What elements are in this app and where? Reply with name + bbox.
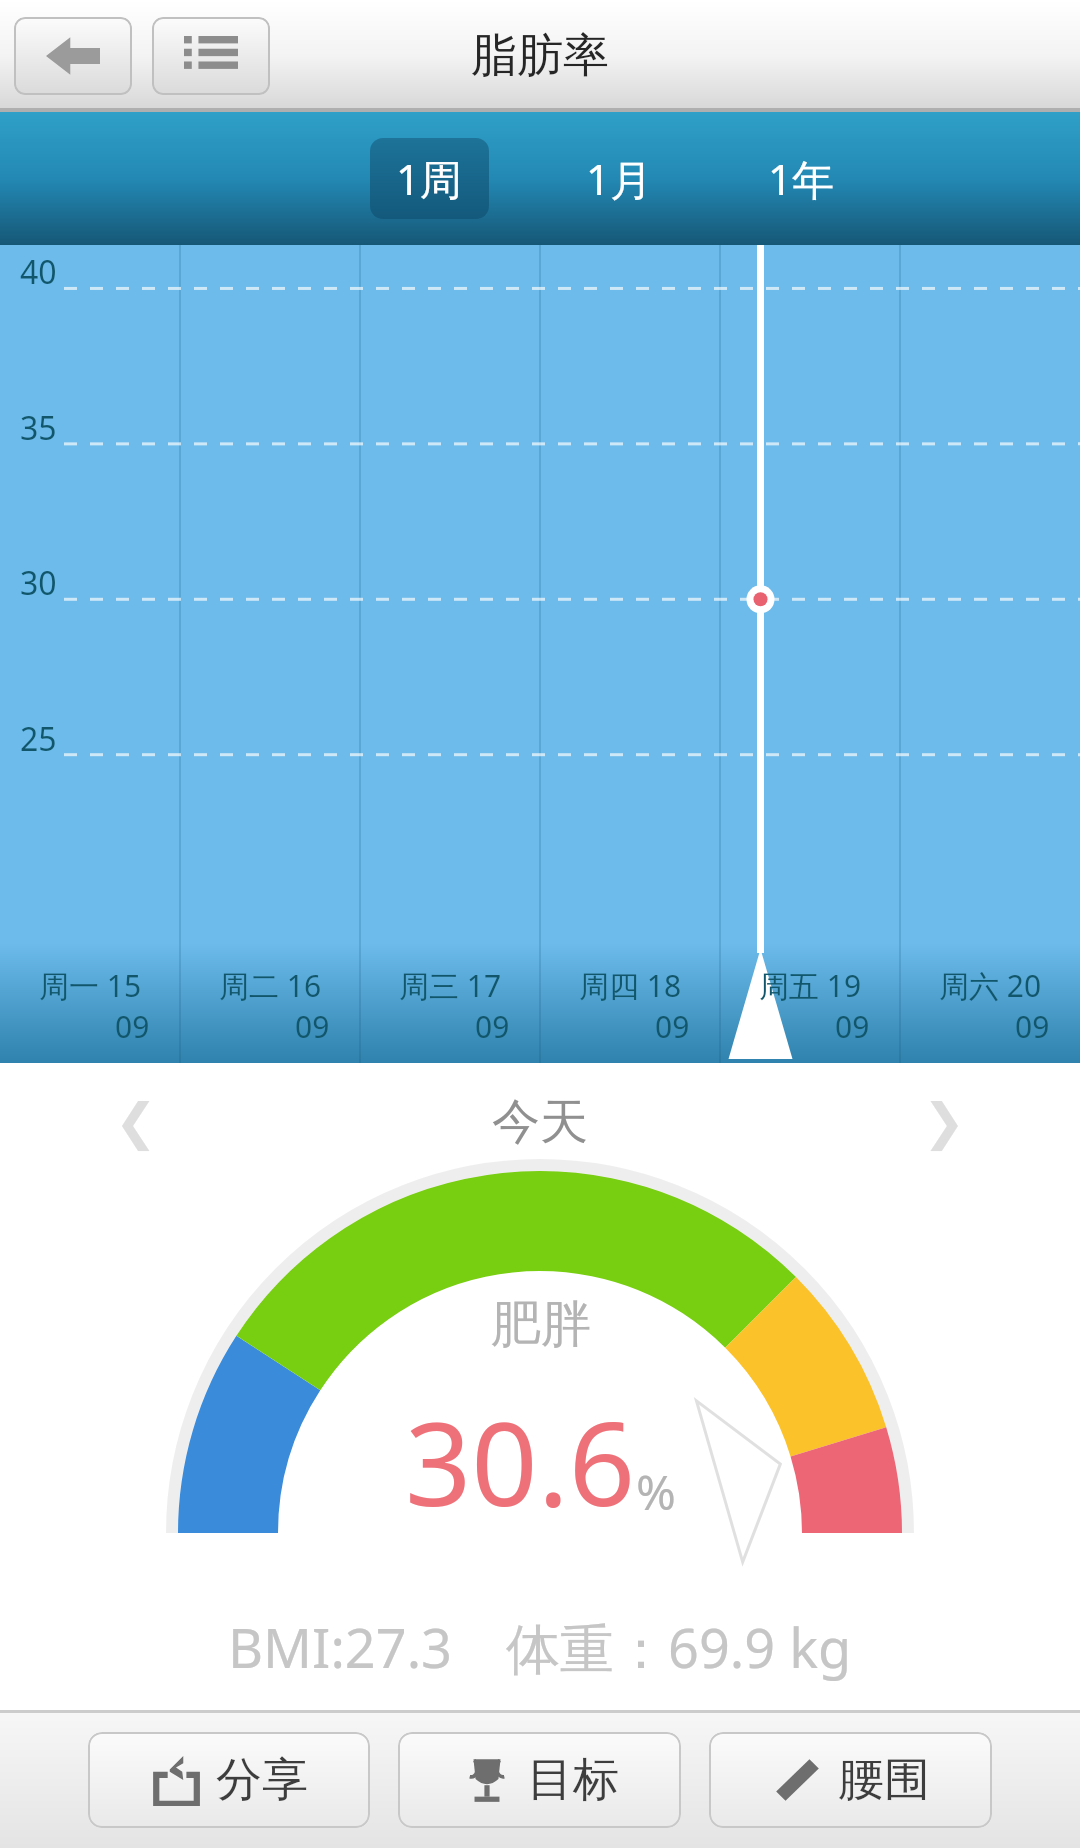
staticText: 周六 20 [939,965,1042,1006]
staticText: % [636,1459,676,1524]
staticText: ❮ [115,1093,157,1151]
button[interactable]: Menu [152,17,270,95]
staticText: 腰围 [838,1751,930,1809]
button[interactable]: 1年 [742,138,861,219]
staticText: 09 [115,1006,150,1047]
staticText: 周四 18 [579,965,682,1006]
button[interactable]: 腰围 [709,1732,992,1828]
staticText: 1周 [396,150,463,207]
staticText: 40 [20,250,57,294]
staticText: 目标 [527,1751,619,1809]
staticText: 周二 16 [219,965,322,1006]
staticText: BMI:27.3 [228,1610,452,1684]
staticText: 周一 15 [39,965,142,1006]
staticText: 30 [20,561,57,605]
staticText: 25 [20,717,57,761]
button[interactable]: 目标 [398,1732,681,1828]
staticText: 周五 19 [759,965,862,1006]
staticText: 30.6 [405,1382,636,1540]
staticText: 周三 17 [399,965,502,1006]
button[interactable]: 今天 [492,1092,588,1152]
staticText: 35 [20,406,57,450]
staticText: 09 [835,1006,870,1047]
staticText: 分享 [216,1751,308,1809]
button[interactable]: Previous [98,1084,174,1160]
staticText: 体重：69.9 kg [506,1610,852,1684]
button[interactable]: 分享 [88,1732,370,1828]
staticText: 09 [655,1006,690,1047]
staticText: 脂肪率 [471,27,609,85]
staticText: 09 [295,1006,330,1047]
button[interactable]: 1月 [560,138,679,219]
staticText: 肥胖 [491,1293,591,1356]
staticText: 1年 [768,150,835,207]
staticText: 09 [1015,1006,1050,1047]
button[interactable]: 1周 [370,138,489,219]
button[interactable]: Next [906,1084,982,1160]
staticText: 1月 [586,150,653,207]
staticText: ❯ [923,1093,965,1151]
button[interactable]: Back [14,17,132,95]
staticText: 09 [475,1006,510,1047]
